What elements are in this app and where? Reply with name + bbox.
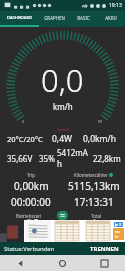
staticText: 0,0km/h — [83, 133, 116, 145]
button[interactable]: Recents — [83, 255, 125, 271]
staticText: 00:00:00 — [11, 195, 51, 209]
staticText: AKKU — [97, 15, 125, 21]
staticText: ▶ X — [115, 222, 122, 227]
staticText: 17:13:31 — [74, 195, 114, 209]
staticText: 5115,13km — [68, 179, 120, 193]
staticText: 19:13 — [109, 2, 122, 9]
button[interactable]: Home — [41, 255, 83, 271]
button[interactable]: Info — [57, 211, 68, 220]
staticText: DASHBOARD — [0, 15, 39, 21]
button[interactable]: TRENNEN — [88, 244, 121, 254]
staticText: GRAPHEN — [39, 15, 70, 21]
button[interactable]: BASIC — [70, 11, 97, 25]
staticText: Betriebszeit — [16, 213, 42, 219]
staticText: дф — [82, 3, 88, 8]
staticText: Status:Verbunden — [4, 245, 55, 253]
staticText: BASIC — [70, 15, 97, 21]
button[interactable]: GRAPHEN — [39, 11, 70, 25]
staticText: 35,66V — [7, 153, 33, 164]
staticText: 99 — [98, 119, 103, 124]
staticText: 0 — [22, 119, 25, 124]
staticText: Total — [91, 213, 102, 219]
staticText: TRENNEN — [90, 245, 119, 253]
button[interactable]: Back — [0, 255, 41, 271]
staticText: 0,00km — [14, 179, 49, 193]
staticText: 5412mAh — [57, 147, 91, 169]
staticText: Speed — [57, 127, 69, 132]
staticText: mehr — [115, 229, 122, 239]
button[interactable]: DASHBOARD — [0, 11, 39, 25]
staticText: 0,0 — [41, 59, 84, 101]
button[interactable]: Advertisement — [0, 220, 125, 242]
staticText: Trip — [27, 172, 36, 178]
staticText: 35% — [39, 153, 55, 164]
staticText: km/h — [53, 101, 73, 112]
button[interactable]: AKKU — [97, 11, 125, 25]
staticText: 0,4W — [52, 133, 72, 145]
staticText: 22,8km — [93, 153, 121, 164]
staticText: 20°C/20°C — [7, 134, 43, 144]
staticText: Kilometerzähler — [74, 172, 108, 178]
